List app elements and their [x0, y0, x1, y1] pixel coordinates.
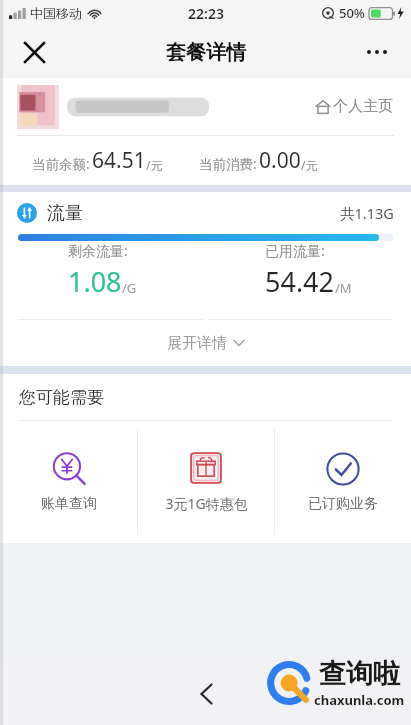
staticText: 中国移动 — [30, 5, 82, 21]
staticText: chaxunla.com — [314, 691, 405, 709]
staticText: 1.08 — [68, 263, 122, 300]
staticText: 展开详情 — [167, 334, 227, 353]
staticText: 账单查询 — [41, 495, 97, 513]
button[interactable]: Close — [14, 32, 54, 72]
staticText: 查询啦 — [319, 657, 400, 691]
button[interactable]: 个人主页 — [303, 89, 405, 124]
staticText: /G — [122, 279, 137, 297]
button[interactable]: More options — [355, 30, 399, 74]
staticText: 剩余流量: — [68, 241, 128, 260]
button[interactable]: Back — [181, 669, 231, 719]
staticText: 0.00 — [259, 146, 301, 175]
staticText: 50% — [339, 4, 365, 22]
staticText: 当前余额: — [32, 155, 90, 173]
staticText: 已订购业务 — [308, 495, 378, 513]
staticText: 流量 — [47, 202, 83, 225]
staticText: 已用流量: — [265, 241, 325, 260]
staticText: /M — [335, 279, 352, 297]
button[interactable]: 账单查询 — [0, 421, 137, 543]
button[interactable]: 展开详情 — [0, 320, 411, 366]
button[interactable]: 个人主页 — [0, 78, 411, 135]
staticText: 3元1G特惠包 — [165, 494, 248, 513]
staticText: 22:23 — [188, 4, 224, 23]
staticText: 共1.13G — [340, 203, 394, 223]
staticText: /元 — [146, 157, 163, 173]
staticText: 套餐详情 — [166, 40, 246, 65]
staticText: 64.51 — [92, 146, 146, 175]
staticText: /元 — [301, 157, 318, 173]
staticText: 您可能需要 — [19, 387, 104, 408]
staticText: 54.42 — [265, 263, 335, 300]
button[interactable]: 3元1G特惠包 — [138, 421, 274, 543]
staticText: 当前消费: — [199, 155, 257, 173]
staticText: 个人主页 — [333, 97, 393, 116]
button[interactable]: 已订购业务 — [275, 421, 411, 543]
